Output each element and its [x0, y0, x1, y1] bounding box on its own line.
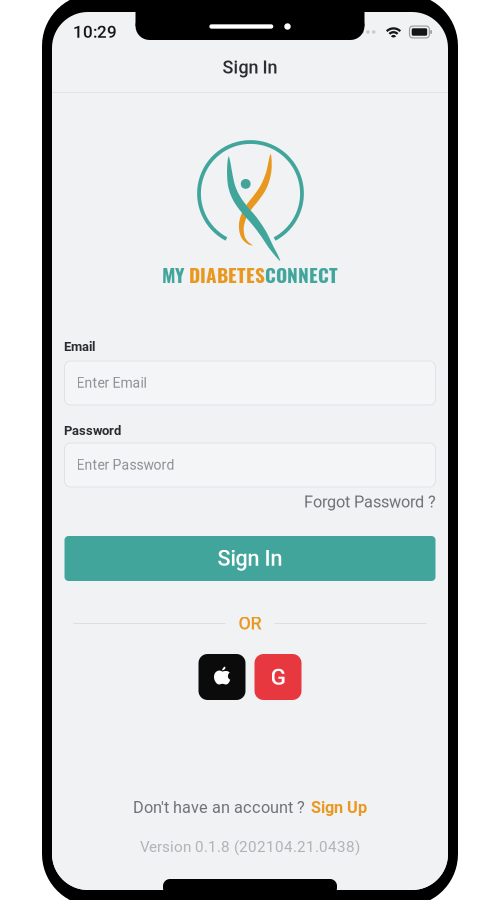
- staticText: Version 0.1.8 (202104.21.0438): [140, 838, 360, 856]
- staticText: Sign Up: [311, 798, 367, 817]
- staticText: Forgot Password ?: [304, 492, 436, 512]
- staticText: MY: [162, 260, 189, 288]
- staticText: Sign In: [222, 57, 277, 78]
- staticText: Don't have an account ?: [133, 798, 305, 817]
- staticText: CONNECT: [265, 260, 338, 288]
- staticText: Enter Password: [76, 457, 174, 473]
- button[interactable]: Sign Up: [311, 798, 367, 817]
- button[interactable]: Sign in with Google: [254, 654, 301, 700]
- button[interactable]: Forgot Password ?: [64, 490, 436, 514]
- staticText: G: [270, 664, 285, 690]
- staticText: Sign In: [217, 546, 282, 571]
- button[interactable]: Sign In: [64, 536, 435, 581]
- staticText: 10:29: [73, 22, 117, 42]
- staticText: Email: [64, 339, 95, 354]
- staticText: Password: [64, 423, 121, 438]
- staticText: Enter Email: [76, 375, 146, 391]
- staticText: DIABETES: [189, 260, 265, 288]
- staticText: OR: [238, 613, 261, 634]
- button[interactable]: Sign in with Apple: [198, 654, 245, 700]
